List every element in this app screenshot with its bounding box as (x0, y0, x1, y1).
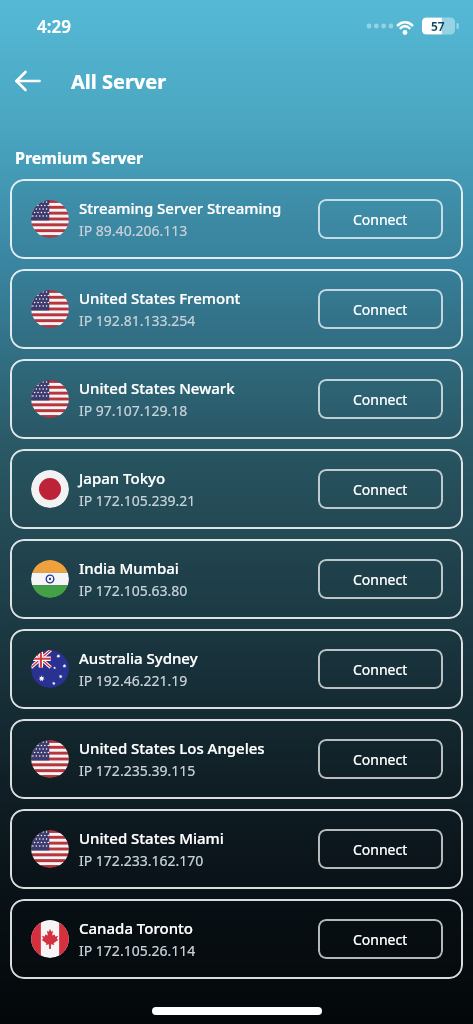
staticText: IP 192.81.133.254 (79, 311, 196, 330)
staticText: United States Newark (79, 378, 235, 398)
staticText: IP 172.105.63.80 (79, 581, 188, 600)
button[interactable]: Connect (318, 829, 443, 869)
button[interactable]: Connect (318, 649, 443, 689)
staticText: IP 97.107.129.18 (79, 401, 188, 420)
staticText: Streaming Server Streaming (79, 198, 282, 218)
button[interactable]: United States Fremont (10, 269, 463, 349)
staticText: India Mumbai (79, 558, 179, 578)
button[interactable]: Australia Sydney (10, 629, 463, 709)
staticText: IP 172.105.26.114 (79, 941, 196, 960)
button[interactable]: Connect (318, 919, 443, 959)
staticText: United States Los Angeles (79, 738, 265, 758)
staticText: 4:29 (37, 15, 71, 37)
button[interactable]: Connect (318, 559, 443, 599)
button[interactable]: Connect (318, 379, 443, 419)
staticText: Connect (353, 390, 408, 409)
button[interactable]: United States Los Angeles (10, 719, 463, 799)
staticText: United States Miami (79, 828, 224, 848)
button[interactable]: Connect (318, 739, 443, 779)
staticText: Connect (353, 210, 408, 229)
staticText: IP 172.105.239.21 (79, 491, 196, 510)
button[interactable]: United States Newark (10, 359, 463, 439)
button[interactable] (15, 65, 47, 97)
staticText: IP 192.46.221.19 (79, 671, 188, 690)
staticText: Connect (353, 570, 408, 589)
staticText: IP 89.40.206.113 (79, 221, 188, 240)
button[interactable]: Connect (318, 469, 443, 509)
staticText: All Server (71, 68, 167, 95)
staticText: Connect (353, 300, 408, 319)
staticText: 57 (431, 18, 445, 34)
staticText: IP 172.235.39.115 (79, 761, 196, 780)
staticText: Connect (353, 840, 408, 859)
button[interactable]: United States Miami (10, 809, 463, 889)
staticText: Connect (353, 480, 408, 499)
staticText: Connect (353, 750, 408, 769)
staticText: IP 172.233.162.170 (79, 851, 204, 870)
staticText: Connect (353, 930, 408, 949)
button[interactable]: Connect (318, 289, 443, 329)
button[interactable]: Streaming Server Streaming (10, 179, 463, 259)
staticText: Premium Server (15, 147, 144, 169)
staticText: United States Fremont (79, 288, 241, 308)
button[interactable]: Connect (318, 199, 443, 239)
staticText: Connect (353, 660, 408, 679)
staticText: Canada Toronto (79, 918, 193, 938)
button[interactable]: Canada Toronto (10, 899, 463, 979)
staticText: Australia Sydney (79, 648, 198, 668)
button[interactable]: India Mumbai (10, 539, 463, 619)
staticText: Japan Tokyo (79, 468, 166, 488)
button[interactable]: Japan Tokyo (10, 449, 463, 529)
